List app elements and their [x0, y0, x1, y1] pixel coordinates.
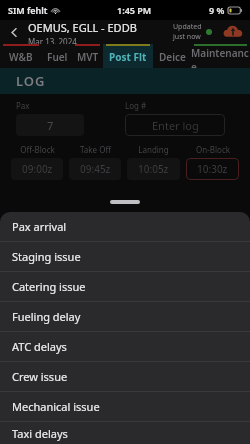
staticText: 10:30z: [197, 162, 228, 176]
staticText: Log #: [125, 100, 147, 111]
button[interactable]: 7: [16, 114, 84, 136]
staticText: 7: [47, 118, 54, 133]
staticText: SIM fehlt: [8, 4, 48, 16]
staticText: LOG: [16, 72, 46, 90]
staticText: Fueling delay: [12, 309, 81, 324]
staticText: Enter log: [152, 118, 199, 133]
staticText: Landing: [138, 144, 169, 155]
staticText: Updated: [173, 22, 202, 32]
staticText: Mar 13, 2024: [28, 36, 77, 44]
button[interactable]: Back: [0, 20, 28, 44]
button[interactable]: Crew issue: [0, 362, 250, 391]
button[interactable]: ATC delays: [0, 332, 250, 361]
staticText: W&B: [9, 50, 33, 64]
staticText: Crew issue: [12, 369, 68, 384]
button[interactable]: MVT: [72, 44, 103, 68]
staticText: Pax: [16, 100, 30, 111]
staticText: just now: [173, 32, 201, 42]
button[interactable]: 10:30z: [186, 158, 239, 180]
staticText: Catering issue: [12, 279, 86, 294]
staticText: On-Block: [196, 144, 230, 155]
staticText: Staging issue: [12, 249, 81, 264]
staticText: 09:00z: [22, 162, 53, 176]
button[interactable]: Deice: [153, 44, 191, 68]
button[interactable]: Enter log: [125, 114, 225, 136]
button[interactable]: Taxi delays: [0, 422, 250, 444]
button[interactable]: 10:05z: [127, 158, 180, 180]
button[interactable]: Fueling delay: [0, 302, 250, 331]
button[interactable]: 09:00z: [11, 158, 63, 180]
button[interactable]: Mechanical issue: [0, 392, 250, 421]
button[interactable]: Pax arrival: [0, 212, 250, 241]
staticText: MVT: [77, 50, 99, 64]
staticText: ATC delays: [12, 339, 67, 354]
staticText: 09:45z: [80, 162, 111, 176]
button[interactable]: Post Flt: [103, 44, 153, 68]
button[interactable]: Maintenance: [191, 44, 250, 68]
button[interactable]: Catering issue: [0, 272, 250, 301]
staticText: Deice: [159, 50, 186, 64]
staticText: Post Flt: [109, 50, 147, 64]
staticText: OEMUS, EGLL - EDDB: [28, 20, 137, 35]
button[interactable]: W&B: [0, 44, 42, 68]
staticText: Take Off: [80, 144, 111, 155]
staticText: Fuel: [47, 50, 68, 64]
button[interactable]: Fuel: [42, 44, 72, 68]
staticText: Mechanical issue: [12, 399, 100, 414]
staticText: Taxi delays: [12, 426, 68, 441]
staticText: Off-Block: [20, 144, 55, 155]
staticText: Pax arrival: [12, 219, 67, 234]
staticText: 1:45 PM: [117, 4, 152, 16]
staticText: Maintenance: [191, 46, 250, 68]
staticText: 10:05z: [138, 162, 169, 176]
button[interactable]: 09:45z: [69, 158, 121, 180]
button[interactable]: Upload: [220, 20, 246, 44]
staticText: 9 %: [209, 4, 225, 16]
button[interactable]: Staging issue: [0, 242, 250, 271]
